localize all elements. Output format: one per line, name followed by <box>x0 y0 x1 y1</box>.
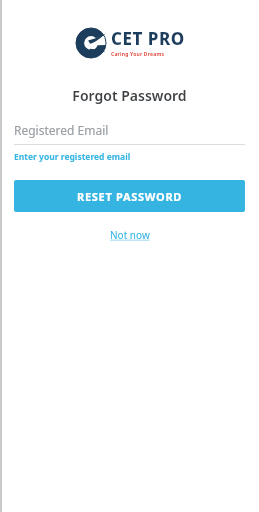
button[interactable]: Registered Email <box>14 122 245 163</box>
other: CET PRO logo <box>75 27 107 59</box>
staticText: RESET PASSWORD <box>77 189 183 204</box>
button[interactable]: Not now <box>102 225 158 245</box>
button[interactable]: RESET PASSWORD <box>14 180 245 212</box>
staticText: CET PRO <box>111 27 185 50</box>
staticText: Caring Your Dreams <box>111 51 165 58</box>
staticText: Forgot Password <box>72 86 187 105</box>
staticText: Enter your registered email <box>14 151 131 163</box>
staticText: Not now <box>110 228 150 242</box>
staticText: Registered Email <box>14 122 109 138</box>
